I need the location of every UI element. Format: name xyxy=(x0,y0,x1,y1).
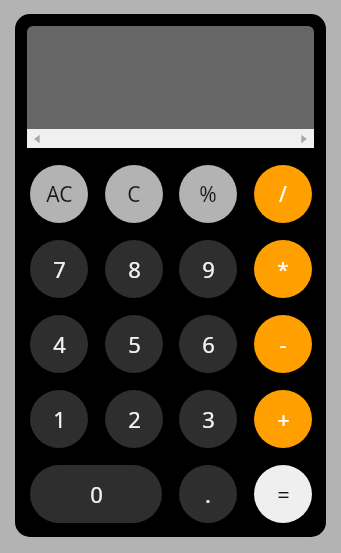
button[interactable]: 0 xyxy=(30,465,162,523)
button[interactable]: Scroll right xyxy=(296,132,310,146)
button[interactable]: 8 xyxy=(105,240,163,298)
button[interactable]: % xyxy=(179,165,237,223)
staticText: 6 xyxy=(202,329,215,359)
button[interactable]: Scroll left xyxy=(31,132,45,146)
staticText: - xyxy=(279,329,287,359)
button[interactable]: - xyxy=(254,315,312,373)
staticText: = xyxy=(277,479,290,509)
button[interactable]: 2 xyxy=(105,390,163,448)
button[interactable]: AC xyxy=(30,165,88,223)
button[interactable]: 6 xyxy=(179,315,237,373)
button[interactable]: 3 xyxy=(179,390,237,448)
staticText: + xyxy=(277,404,290,434)
staticText: 7 xyxy=(53,254,66,284)
button[interactable]: C xyxy=(105,165,163,223)
staticText: 4 xyxy=(53,329,66,359)
staticText: 0 xyxy=(90,479,103,509)
staticText: * xyxy=(277,256,289,283)
button[interactable]: / xyxy=(254,165,312,223)
button[interactable]: 5 xyxy=(105,315,163,373)
button[interactable]: 9 xyxy=(179,240,237,298)
staticText: 1 xyxy=(53,404,66,434)
staticText: . xyxy=(205,479,211,509)
staticText: AC xyxy=(46,180,73,209)
staticText: C xyxy=(127,180,141,209)
staticText: % xyxy=(199,180,217,209)
button[interactable]: = xyxy=(254,465,312,523)
button[interactable]: 7 xyxy=(30,240,88,298)
staticText: 3 xyxy=(202,404,215,434)
button[interactable]: + xyxy=(254,390,312,448)
staticText: 2 xyxy=(128,404,141,434)
staticText: 8 xyxy=(128,254,141,284)
staticText: 9 xyxy=(202,254,215,284)
button[interactable]: * xyxy=(254,240,312,298)
button[interactable]: 4 xyxy=(30,315,88,373)
staticText: / xyxy=(279,180,287,209)
staticText: 5 xyxy=(128,329,141,359)
button[interactable]: . xyxy=(179,465,237,523)
button[interactable]: 1 xyxy=(30,390,88,448)
